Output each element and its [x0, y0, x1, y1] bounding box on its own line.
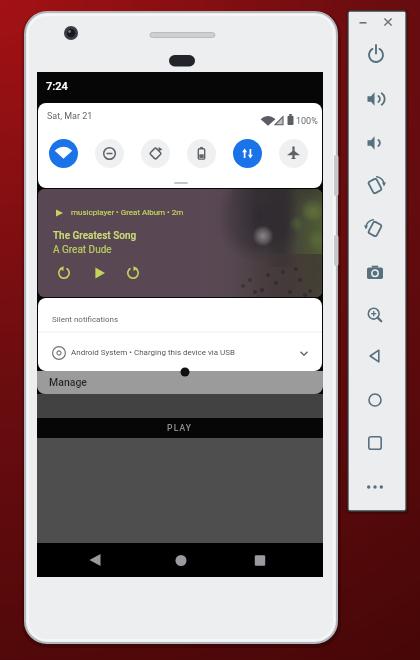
button[interactable] [358, 169, 392, 203]
button[interactable] [53, 262, 75, 284]
button[interactable] [187, 139, 216, 168]
button[interactable] [358, 470, 392, 504]
button[interactable] [141, 139, 170, 168]
button[interactable] [358, 212, 392, 246]
staticText: Sat, Mar 21 [47, 111, 93, 122]
staticText: The Greatest Song [53, 230, 137, 242]
staticText: Android System • Charging this device vi… [71, 348, 236, 357]
button[interactable] [75, 543, 115, 577]
button[interactable] [358, 339, 392, 373]
staticText: 100% [296, 116, 318, 127]
button[interactable] [88, 262, 110, 284]
button[interactable] [358, 426, 392, 460]
staticText: Silent notifications [52, 315, 119, 324]
button[interactable] [279, 139, 308, 168]
staticText: A Great Dude [53, 244, 112, 256]
button[interactable] [49, 139, 78, 168]
button[interactable] [359, 37, 393, 71]
button[interactable] [358, 383, 392, 417]
button[interactable] [122, 262, 144, 284]
button[interactable] [240, 543, 280, 577]
button[interactable] [95, 139, 124, 168]
button[interactable] [38, 333, 322, 371]
staticText: PLAY [167, 423, 193, 433]
staticText: musicplayer • Great Album • 2m [71, 208, 184, 217]
button[interactable] [161, 543, 201, 577]
button[interactable] [358, 298, 392, 332]
button[interactable]: Manage [37, 371, 323, 394]
button[interactable] [358, 126, 392, 160]
button[interactable] [356, 15, 370, 29]
button[interactable] [233, 139, 262, 168]
staticText: Manage [49, 376, 87, 388]
button[interactable] [381, 15, 395, 29]
staticText: 7:24 [46, 80, 68, 93]
button[interactable]: PLAY [37, 418, 323, 438]
button[interactable] [358, 256, 392, 290]
button[interactable] [358, 82, 392, 116]
